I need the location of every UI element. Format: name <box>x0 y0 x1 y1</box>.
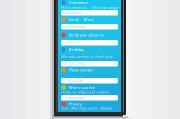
staticText: Phone number <box>68 67 93 73</box>
button[interactable]: Verify your phone no. <box>58 0 121 112</box>
button[interactable]: Birthday <box>58 0 121 112</box>
staticText: •••••••• <box>63 40 79 45</box>
staticText: Your data stays yours, always <box>61 105 112 111</box>
staticText: Must be unique <box>92 5 118 10</box>
button[interactable]: Where you live <box>58 0 121 112</box>
staticText: +1 555 0147 <box>63 78 83 83</box>
staticText: We only use this to check your age <box>61 54 117 59</box>
staticText: Pick a name others see <box>61 5 90 10</box>
staticText: Username <box>68 0 87 5</box>
staticText: Verify your phone no. <box>68 32 104 38</box>
staticText: United States <box>63 95 85 100</box>
button[interactable]: Email · Work <box>58 0 121 112</box>
staticText: Privacy <box>68 101 81 107</box>
staticText: Helps us show local content <box>61 89 108 95</box>
staticText: Email · Work <box>68 17 93 22</box>
staticText: 01 / 01 / 1990 <box>63 61 85 66</box>
button[interactable]: Privacy <box>58 0 121 112</box>
button[interactable]: Username <box>58 0 121 112</box>
staticText: Where you live <box>68 85 94 90</box>
staticText: yourname <box>63 10 81 15</box>
button[interactable]: Phone number <box>58 0 121 112</box>
staticText: name@mail <box>63 24 85 29</box>
staticText: Birthday <box>68 47 83 52</box>
